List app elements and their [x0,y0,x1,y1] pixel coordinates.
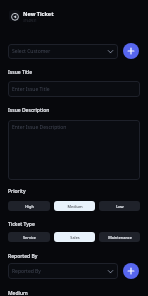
button[interactable]: Sales [54,232,95,242]
staticText: Select Customer [12,48,51,55]
button[interactable]: Reported By [8,263,118,279]
button[interactable]: Low [99,201,140,211]
button[interactable]: Enter Issue Title [8,81,140,97]
staticText: Reported By [12,268,41,275]
staticText: Reported By [8,253,38,260]
staticText: New Ticket [23,10,54,17]
button[interactable]: Select Customer [8,44,118,59]
button[interactable]: Add [123,263,139,279]
staticText: Sales [70,235,80,240]
staticText: Service [23,235,36,240]
button[interactable]: Medium [54,201,95,211]
staticText: Ticket Type [8,221,35,228]
staticText: Priority [8,188,26,195]
button[interactable]: Enter Issue Description [8,120,140,180]
staticText: Issue Description [8,107,50,114]
button[interactable]: Add [123,43,139,59]
staticText: Issue Title [8,69,33,76]
staticText: Enter Issue Title [12,86,50,93]
button[interactable]: High [8,201,50,211]
staticText: Medium [8,290,28,296]
button[interactable]: Maintenance [99,232,140,242]
staticText: Enter Issue Description [12,124,67,131]
staticText: Medium [67,204,83,209]
staticText: 31549531 [23,19,37,23]
button[interactable]: Service [8,232,50,242]
button[interactable]: Back [9,10,20,21]
staticText: High [25,204,34,209]
staticText: Low [116,204,124,209]
staticText: Maintenance [108,235,132,240]
